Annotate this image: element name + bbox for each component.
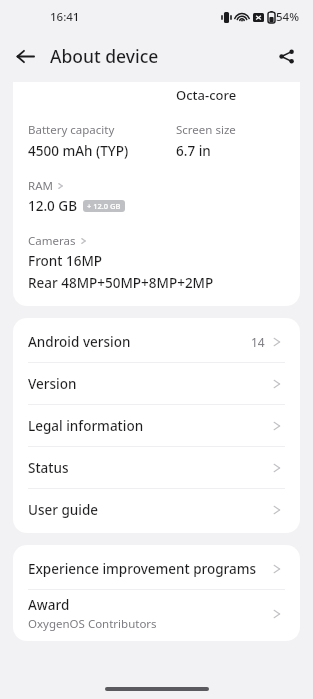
- button[interactable]: Back: [6, 37, 44, 75]
- button[interactable]: Cameras: [28, 233, 89, 249]
- staticText: Cameras: [28, 233, 76, 249]
- staticText: RAM: [28, 178, 53, 194]
- staticText: About device: [50, 44, 159, 68]
- staticText: 4500 mAh (TYP): [28, 142, 129, 160]
- staticText: + 12.0 GB: [87, 201, 121, 211]
- button[interactable]: Version: [13, 363, 300, 404]
- staticText: Android version: [28, 333, 131, 351]
- button[interactable]: Android version: [13, 321, 300, 362]
- button[interactable]: Award: [13, 590, 300, 638]
- staticText: Version: [28, 375, 77, 393]
- staticText: 6.7 in: [176, 142, 211, 160]
- button[interactable]: User guide: [13, 489, 300, 530]
- staticText: 14: [251, 334, 265, 350]
- button[interactable]: Legal information: [13, 405, 300, 446]
- staticText: 12.0 GB: [28, 197, 77, 215]
- button[interactable]: Status: [13, 447, 300, 488]
- staticText: 16:41: [50, 9, 80, 25]
- staticText: Rear 48MP+50MP+8MP+2MP: [28, 274, 214, 292]
- staticText: Status: [28, 459, 69, 477]
- staticText: Screen size: [176, 122, 236, 138]
- staticText: Battery capacity: [28, 122, 115, 138]
- button[interactable]: RAM: [28, 178, 66, 194]
- staticText: Front 16MP: [28, 252, 103, 270]
- staticText: User guide: [28, 501, 99, 519]
- staticText: OxygenOS Contributors: [28, 616, 157, 632]
- staticText: Legal information: [28, 417, 144, 435]
- staticText: 54%: [276, 9, 299, 25]
- staticText: Award: [28, 596, 70, 614]
- button[interactable]: Experience improvement programs: [13, 548, 300, 589]
- button[interactable]: Share: [267, 37, 305, 75]
- staticText: Octa-core: [176, 86, 237, 104]
- staticText: Experience improvement programs: [28, 560, 257, 578]
